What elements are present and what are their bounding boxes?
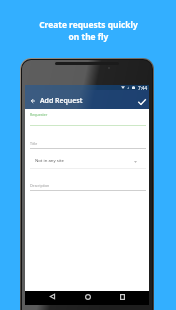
staticText: Description bbox=[30, 183, 50, 188]
button[interactable]: Save bbox=[134, 94, 150, 110]
staticText: Not in any site bbox=[35, 157, 64, 163]
staticText: 7:44 bbox=[138, 85, 148, 90]
button[interactable]: Back bbox=[25, 93, 41, 109]
staticText: Title bbox=[30, 141, 38, 146]
staticText: Create requests quickly on the fly bbox=[39, 19, 138, 43]
staticText: Add Request bbox=[40, 96, 83, 106]
button[interactable]: Back bbox=[47, 291, 58, 302]
button[interactable]: Recents bbox=[117, 291, 128, 302]
button[interactable]: Home bbox=[82, 291, 93, 302]
staticText: Requester bbox=[30, 112, 48, 117]
